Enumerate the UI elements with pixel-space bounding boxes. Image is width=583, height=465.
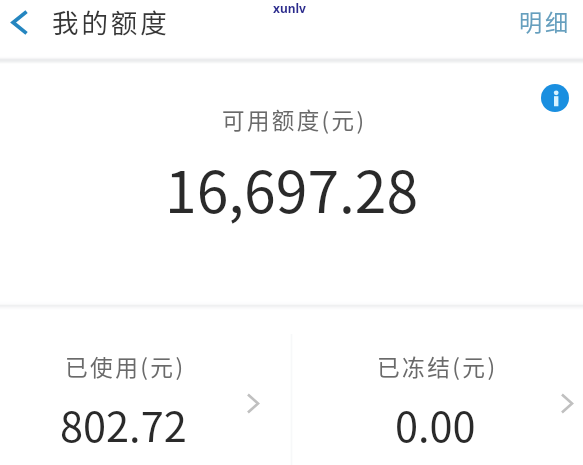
button[interactable]: 已冻结(元) [292,310,583,465]
staticText: 已冻结(元) [377,350,498,383]
button[interactable]: Info [539,82,570,113]
staticText: xunlv [273,0,306,16]
button[interactable]: 明细 [505,0,583,58]
staticText: 16,697.28 [165,147,419,230]
staticText: 802.72 [60,394,187,454]
staticText: 明细 [519,4,571,38]
staticText: 我的额度 [52,2,170,40]
staticText: 已使用(元) [65,350,186,383]
staticText: 可用额度(元) [222,103,367,136]
button[interactable]: Back [1,4,37,40]
button[interactable]: 已使用(元) [0,310,291,465]
staticText: 0.00 [395,394,476,454]
